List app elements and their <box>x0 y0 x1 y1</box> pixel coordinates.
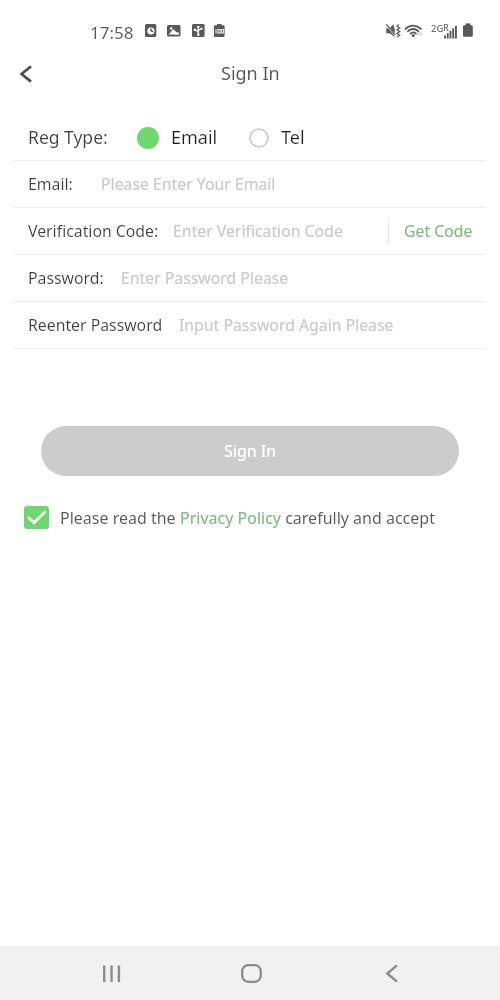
staticText: Enter Password Please <box>121 267 289 289</box>
staticText: 17:58 <box>90 21 134 44</box>
button[interactable]: Sign In <box>41 426 459 476</box>
staticText: Please read the <box>60 507 180 529</box>
staticText: carefully and accept <box>281 507 435 529</box>
staticText: Get Code <box>404 220 473 242</box>
staticText: 2G <box>431 22 444 35</box>
staticText: Enter Verification Code <box>173 220 343 242</box>
staticText: Sign In <box>224 440 277 462</box>
staticText: Please Enter Your Email <box>101 173 276 195</box>
staticText: Verification Code: <box>28 220 159 242</box>
staticText: Sign In <box>221 61 280 86</box>
button[interactable]: Recent apps <box>81 946 141 1000</box>
button[interactable]: Please read the <box>0 506 500 529</box>
button[interactable]: Email: <box>0 161 500 207</box>
button[interactable]: Back <box>5 54 45 94</box>
staticText: Reg Type: <box>28 125 108 149</box>
staticText: R <box>443 21 449 33</box>
button[interactable]: Email <box>137 125 218 150</box>
button[interactable]: Reenter Password <box>0 302 500 348</box>
staticText: Email <box>171 125 218 150</box>
staticText: Input Password Again Please <box>179 314 394 336</box>
button[interactable]: Tel <box>249 125 305 150</box>
button[interactable]: Verification Code: <box>0 208 388 254</box>
button[interactable]: Get Code <box>389 208 500 254</box>
button[interactable]: Back <box>361 946 421 1000</box>
staticText: Privacy Policy <box>180 507 281 529</box>
staticText: Password: <box>28 267 104 289</box>
staticText: Email: <box>28 173 73 195</box>
staticText: Reenter Password <box>28 314 163 336</box>
button[interactable]: Password: <box>0 255 500 301</box>
button[interactable]: Home <box>221 946 281 1000</box>
staticText: Tel <box>281 125 305 150</box>
